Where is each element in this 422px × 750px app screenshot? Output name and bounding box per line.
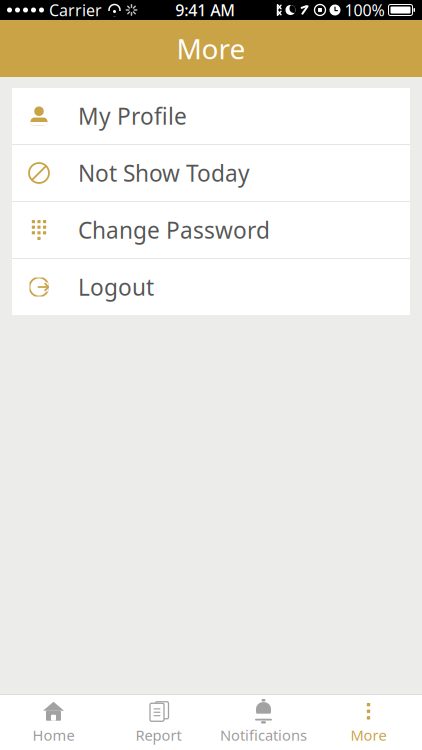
button[interactable]: Notifications: [211, 695, 316, 749]
staticText: 9:41 AM: [175, 0, 235, 21]
button[interactable]: Not Show Today: [12, 145, 410, 202]
staticText: Notifications: [220, 725, 307, 745]
staticText: Report: [135, 725, 181, 745]
button[interactable]: My Profile: [12, 88, 410, 145]
staticText: More: [350, 725, 386, 745]
staticText: Logout: [78, 272, 154, 302]
staticText: More: [176, 30, 245, 67]
button[interactable]: Home: [1, 695, 106, 749]
staticText: 100%: [344, 0, 384, 21]
staticText: Carrier: [49, 0, 102, 21]
button[interactable]: Logout: [12, 259, 410, 315]
staticText: Not Show Today: [78, 158, 250, 188]
staticText: Change Password: [78, 215, 270, 245]
button[interactable]: Report: [106, 695, 211, 749]
staticText: My Profile: [78, 101, 187, 131]
button[interactable]: More: [316, 695, 421, 749]
staticText: Home: [32, 725, 74, 745]
button[interactable]: Change Password: [12, 202, 410, 259]
